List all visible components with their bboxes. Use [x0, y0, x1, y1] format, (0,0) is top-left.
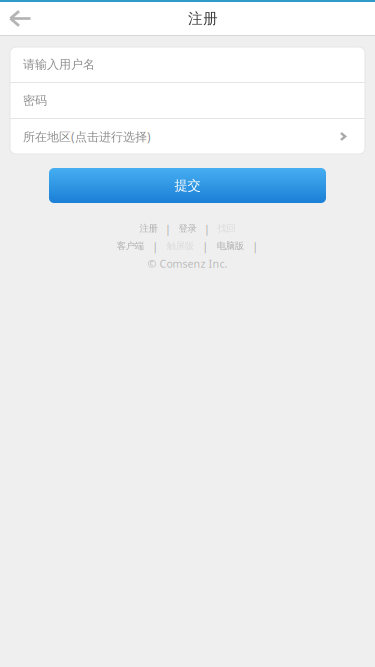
button[interactable]: Back: [0, 2, 40, 34]
button[interactable]: 密码: [10, 83, 365, 118]
staticText: 注册: [188, 9, 218, 27]
button[interactable]: 所在地区(点击进行选择): [10, 119, 365, 154]
staticText: |: [165, 221, 171, 236]
staticText: 客户端: [117, 240, 144, 252]
staticText: 触屏版: [167, 240, 194, 252]
staticText: 提交: [174, 177, 200, 194]
button[interactable]: 注册: [139, 222, 157, 235]
button[interactable]: 客户端: [117, 239, 144, 252]
staticText: |: [204, 221, 210, 236]
button[interactable]: 找回: [217, 222, 235, 235]
button[interactable]: 电脑版: [217, 239, 244, 252]
button[interactable]: 请输入用户名: [10, 47, 365, 82]
staticText: |: [252, 239, 258, 253]
button[interactable]: 登录: [178, 222, 196, 235]
staticText: 登录: [178, 223, 196, 234]
staticText: 找回: [217, 223, 235, 234]
staticText: 注册: [139, 223, 157, 234]
staticText: 电脑版: [217, 240, 244, 252]
staticText: 所在地区(点击进行选择): [23, 128, 151, 144]
staticText: |: [152, 239, 158, 253]
button[interactable]: 触屏版: [167, 239, 194, 252]
staticText: |: [202, 239, 208, 253]
staticText: 请输入用户名: [23, 57, 95, 72]
staticText: 密码: [23, 93, 47, 108]
staticText: © Comsenz Inc.: [147, 256, 227, 271]
button[interactable]: 提交: [49, 168, 326, 203]
